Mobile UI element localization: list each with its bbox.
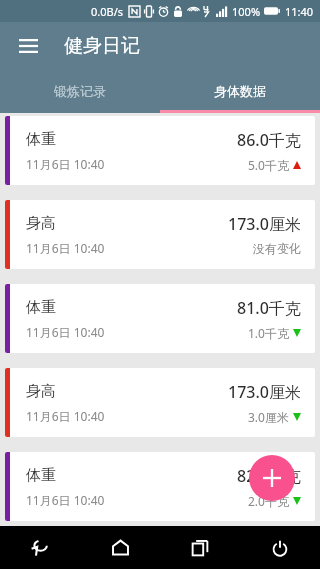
staticText: 11:40 — [285, 4, 314, 19]
button[interactable]: 体重 — [5, 116, 315, 185]
button[interactable]: 锻炼记录 — [0, 69, 160, 113]
button[interactable]: 身高 — [5, 200, 315, 269]
staticText: 0.0B/s — [91, 4, 124, 19]
button[interactable]: Back — [0, 526, 80, 569]
staticText: 11月6日 10:40 — [26, 240, 105, 256]
button[interactable]: Home — [80, 526, 160, 569]
staticText: 11月6日 10:40 — [26, 324, 105, 340]
staticText: 82.0千克 — [237, 465, 301, 487]
button[interactable]: Recents — [160, 526, 240, 569]
staticText: 身高 — [26, 214, 56, 233]
staticText: 5.0千克 — [248, 157, 289, 173]
button[interactable]: 体重 — [5, 452, 315, 521]
staticText: 81.0千克 — [237, 297, 301, 319]
button[interactable]: Power — [240, 526, 320, 569]
staticText: 体重 — [26, 298, 56, 317]
staticText: 11月6日 10:40 — [26, 492, 105, 508]
button[interactable]: 身高 — [5, 536, 315, 569]
staticText: 11月6日 10:40 — [26, 408, 105, 424]
staticText: 176.0厘米 — [228, 536, 301, 558]
staticText: 体重 — [26, 466, 56, 485]
staticText: 体重 — [26, 130, 56, 149]
staticText: 1.0千克 — [248, 325, 289, 341]
staticText: 173.0厘米 — [228, 381, 301, 403]
button[interactable]: Menu — [8, 26, 48, 66]
staticText: 身体数据 — [214, 83, 266, 99]
staticText: 86.0千克 — [237, 129, 301, 151]
button[interactable]: 身体数据 — [160, 69, 320, 113]
button[interactable]: Add entry — [249, 455, 295, 501]
staticText: 没有变化 — [253, 241, 301, 256]
staticText: 健身日记 — [64, 34, 140, 58]
staticText: 2.0千克 — [248, 493, 289, 509]
staticText: 锻炼记录 — [54, 83, 106, 99]
staticText: 身高 — [26, 536, 56, 555]
staticText: 11月6日 10:40 — [26, 156, 105, 172]
button[interactable]: 体重 — [5, 284, 315, 353]
staticText: 3.0厘米 — [248, 409, 289, 425]
staticText: 100% — [232, 4, 261, 19]
staticText: 173.0厘米 — [228, 213, 301, 235]
staticText: 身高 — [26, 382, 56, 401]
button[interactable]: 身高 — [5, 368, 315, 437]
